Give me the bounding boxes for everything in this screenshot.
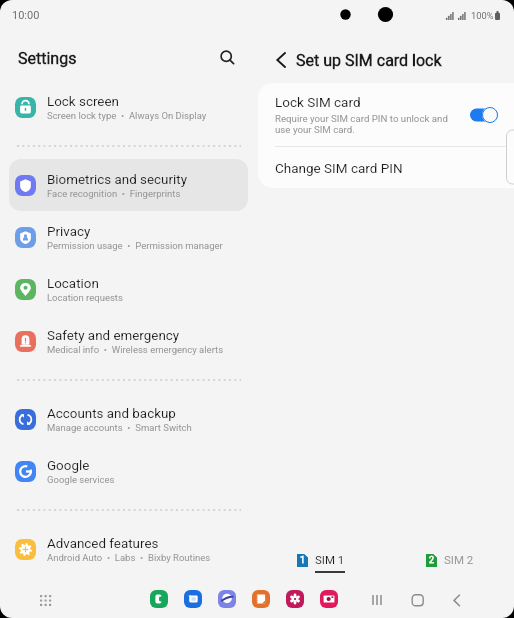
- button[interactable]: 2: [385, 542, 514, 576]
- button[interactable]: msg: [184, 590, 202, 608]
- button[interactable]: Accounts and backup: [9, 393, 248, 445]
- button[interactable]: phone: [150, 590, 168, 608]
- staticText: Safety and emergency: [47, 328, 180, 344]
- button[interactable]: Search: [214, 44, 242, 72]
- staticText: Google: [47, 458, 90, 474]
- staticText: 1: [300, 555, 306, 566]
- staticText: Accounts and backup: [47, 406, 176, 422]
- staticText: SIM 1: [315, 553, 345, 566]
- staticText: Set up SIM card lock: [296, 51, 442, 70]
- button[interactable]: Advanced features: [9, 523, 248, 575]
- staticText: Permission usage • Permission manager: [47, 240, 223, 251]
- button[interactable]: Location: [9, 263, 248, 315]
- button[interactable]: Back: [448, 591, 466, 609]
- staticText: SIM 2: [444, 553, 474, 566]
- button[interactable]: Privacy: [9, 211, 248, 263]
- button[interactable]: notes: [252, 590, 270, 608]
- button[interactable]: browser: [218, 590, 236, 608]
- staticText: Medical info • Wireless emergency alerts: [47, 344, 224, 355]
- staticText: Location: [47, 276, 99, 292]
- staticText: 100%: [471, 10, 494, 21]
- staticText: Change SIM card PIN: [275, 160, 403, 176]
- button[interactable]: gallery: [286, 590, 304, 608]
- button[interactable]: Back: [268, 47, 294, 73]
- staticText: Manage accounts • Smart Switch: [47, 422, 192, 433]
- button[interactable]: 1: [257, 542, 385, 576]
- staticText: Settings: [18, 49, 77, 68]
- staticText: Google services: [47, 474, 115, 485]
- staticText: Privacy: [47, 224, 91, 240]
- button[interactable]: camera: [320, 590, 338, 608]
- staticText: Face recognition • Fingerprints: [47, 188, 181, 199]
- button[interactable]: Home: [409, 591, 427, 609]
- staticText: Lock screen: [47, 94, 119, 110]
- staticText: Android Auto • Labs • Bixby Routines: [47, 552, 211, 563]
- staticText: 10:00: [12, 9, 40, 22]
- staticText: 2: [429, 555, 435, 566]
- staticText: Screen lock type • Always On Display: [47, 110, 207, 121]
- button[interactable]: Lock SIM card: [470, 107, 498, 123]
- button[interactable]: Biometrics and security: [9, 159, 248, 211]
- button[interactable]: Safety and emergency: [9, 315, 248, 367]
- staticText: Require your SIM card PIN to unlock and: [275, 113, 448, 124]
- staticText: Location requests: [47, 292, 123, 303]
- button[interactable]: Lock SIM card: [258, 83, 514, 146]
- button[interactable]: Recents: [370, 591, 388, 609]
- staticText: Biometrics and security: [47, 172, 187, 188]
- button[interactable]: Lock screen: [9, 81, 248, 133]
- staticText: use your SIM card.: [275, 124, 355, 135]
- staticText: Lock SIM card: [275, 94, 361, 110]
- button[interactable]: Google: [9, 445, 248, 497]
- button[interactable]: Apps: [36, 591, 54, 609]
- staticText: Advanced features: [47, 536, 159, 552]
- button[interactable]: Change SIM card PIN: [258, 147, 514, 188]
